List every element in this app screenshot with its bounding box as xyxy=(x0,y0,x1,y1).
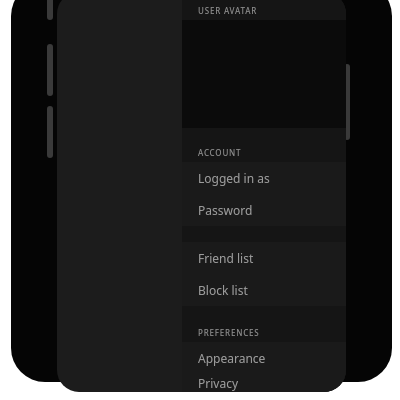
button[interactable]: Privacy xyxy=(182,374,346,392)
staticText: ACCOUNT xyxy=(198,147,242,158)
button[interactable]: Logged in as xyxy=(182,162,346,194)
staticText: USER AVATAR xyxy=(198,5,258,16)
other: Power xyxy=(344,64,350,140)
button[interactable]: Block list xyxy=(182,274,346,306)
button[interactable]: Password xyxy=(182,194,346,226)
staticText: Password xyxy=(198,202,253,218)
other: Mute switch xyxy=(47,0,53,20)
staticText: PREFERENCES xyxy=(198,327,260,338)
staticText: Block list xyxy=(198,282,248,298)
staticText: Friend list xyxy=(198,250,254,266)
staticText: Logged in as xyxy=(198,170,270,186)
button[interactable]: Friend list xyxy=(182,242,346,274)
other: Volume down xyxy=(47,106,53,158)
other: Volume up xyxy=(47,44,53,96)
staticText: Appearance xyxy=(198,350,266,366)
staticText: Privacy xyxy=(198,375,239,391)
button[interactable]: Appearance xyxy=(182,342,346,374)
